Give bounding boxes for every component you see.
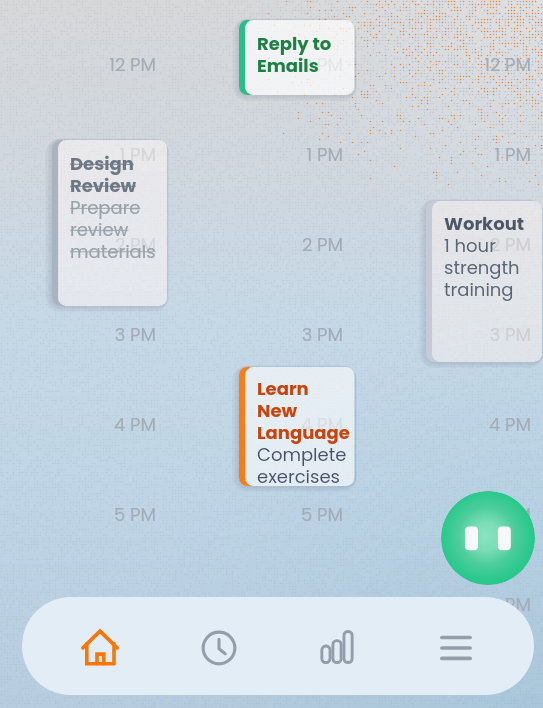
button[interactable]: Design Review Prepare review materials xyxy=(52,140,167,306)
staticText: Workout 1 hour strength training xyxy=(444,211,539,302)
staticText: 5 PM xyxy=(36,502,156,527)
staticText: 12 PM xyxy=(411,52,531,77)
staticText: 2 PM xyxy=(36,232,156,257)
staticText: 3 PM xyxy=(223,322,343,347)
button[interactable]: Reply to Emails xyxy=(239,20,355,95)
button[interactable]: Pause timer xyxy=(441,491,535,585)
staticText: 4 PM xyxy=(223,412,343,437)
staticText: 1 PM xyxy=(411,142,531,167)
button[interactable]: History xyxy=(195,624,243,672)
staticText: Learn New Language Complete exercises xyxy=(257,376,351,486)
staticText: 4 PM xyxy=(411,412,531,437)
staticText: 12 PM xyxy=(36,52,156,77)
staticText: 1 PM xyxy=(223,142,343,167)
staticText: 6 PM xyxy=(36,592,156,617)
button[interactable]: Menu xyxy=(432,624,480,672)
button[interactable]: Learn New Language Complete exercises xyxy=(239,367,355,486)
button[interactable]: Workout 1 hour strength training xyxy=(426,201,542,362)
staticText: 6 PM xyxy=(223,592,343,617)
staticText: Reply to Emails xyxy=(257,31,351,78)
staticText: 2 PM xyxy=(411,232,531,257)
staticText: 2 PM xyxy=(223,232,343,257)
staticText: 4 PM xyxy=(36,412,156,437)
staticText: 12 PM xyxy=(223,52,343,77)
staticText: 6 PM xyxy=(411,592,531,617)
staticText: 3 PM xyxy=(36,322,156,347)
button[interactable]: Statistics xyxy=(313,623,361,671)
staticText: Design Review Prepare review materials xyxy=(70,151,164,264)
button[interactable]: Home xyxy=(76,623,124,671)
staticText: 5 PM xyxy=(411,502,531,527)
staticText: 3 PM xyxy=(411,322,531,347)
staticText: 5 PM xyxy=(223,502,343,527)
staticText: 1 PM xyxy=(36,142,156,167)
